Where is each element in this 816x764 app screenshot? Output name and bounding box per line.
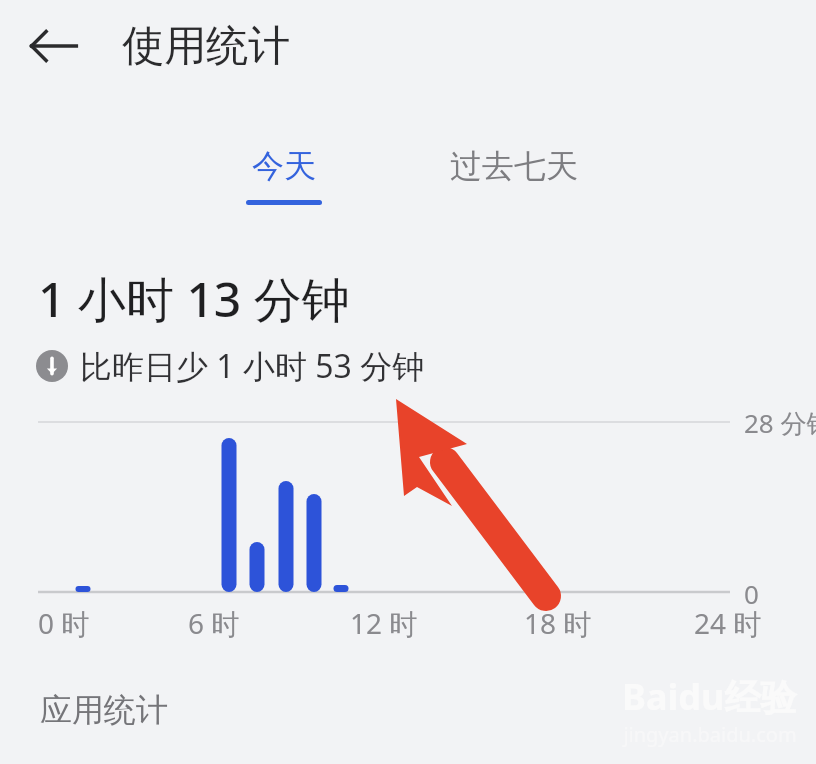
staticText: Baidu经验 (622, 672, 797, 721)
staticText: 比昨日少 1 小时 53 分钟 (80, 344, 425, 388)
button[interactable]: 应用统计 (40, 690, 168, 730)
staticText: 0 时 (38, 604, 90, 642)
staticText: 过去七天 (450, 146, 578, 186)
staticText: 12 时 (350, 604, 418, 642)
button[interactable]: 过去七天 (450, 146, 578, 186)
staticText: 应用统计 (40, 690, 168, 730)
button[interactable]: 今天 (246, 146, 322, 205)
staticText: 1 小时 13 分钟 (38, 266, 350, 332)
staticText: 18 时 (524, 604, 592, 642)
staticText: 28 分钟 (744, 405, 816, 441)
staticText: 24 时 (694, 604, 762, 642)
staticText: 使用统计 (122, 20, 290, 73)
staticText: 0 (744, 576, 759, 611)
staticText: 今天 (252, 146, 316, 186)
staticText: 6 时 (188, 604, 240, 642)
button[interactable]: Back (22, 14, 86, 78)
